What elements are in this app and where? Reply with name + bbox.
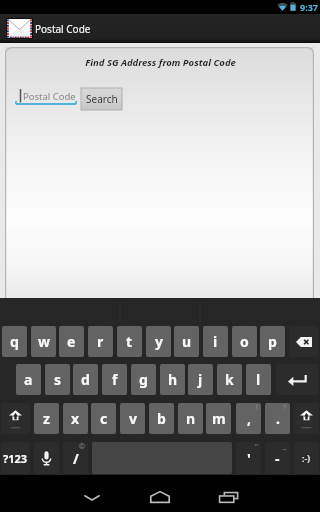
staticText: h	[168, 370, 178, 389]
button[interactable]: Home	[130, 475, 190, 512]
button[interactable]: o	[232, 326, 257, 357]
button[interactable]: Emoji	[294, 442, 319, 474]
staticText: u	[182, 332, 192, 351]
button[interactable]: r	[88, 326, 113, 357]
button[interactable]: -	[265, 442, 290, 474]
staticText: r	[97, 332, 104, 351]
staticText: t	[126, 332, 133, 351]
staticText: g	[139, 370, 148, 389]
staticText: .	[276, 409, 280, 428]
button[interactable]: Recent apps	[198, 475, 258, 512]
button[interactable]: j	[188, 364, 213, 395]
button[interactable]: b	[149, 403, 174, 434]
button[interactable]: ?123	[1, 442, 30, 474]
staticText: ©	[79, 442, 85, 452]
staticText: Postal Code	[23, 90, 76, 103]
button[interactable]: e	[59, 326, 84, 357]
button[interactable]: v	[120, 403, 145, 434]
staticText: j	[198, 370, 203, 389]
staticText: -	[275, 449, 280, 468]
button[interactable]: '	[236, 442, 261, 474]
button[interactable]: q	[2, 326, 27, 357]
staticText: d	[81, 370, 90, 389]
staticText: '	[247, 449, 251, 468]
staticText: ?123	[3, 451, 28, 466]
button[interactable]: z	[34, 403, 59, 434]
staticText: _	[283, 442, 287, 452]
button[interactable]: h	[160, 364, 185, 395]
button[interactable]: Backspace	[289, 326, 318, 357]
staticText: ,	[247, 409, 251, 428]
staticText: s	[54, 370, 62, 389]
staticText: x	[71, 409, 80, 428]
button[interactable]: Enter	[276, 364, 318, 395]
staticText: o	[240, 332, 249, 351]
staticText: z	[43, 409, 50, 428]
staticText: ?	[283, 403, 287, 413]
staticText: Postal Code	[35, 22, 91, 36]
staticText: q	[10, 332, 19, 351]
staticText: a	[24, 370, 33, 389]
staticText: v	[129, 409, 137, 428]
staticText: 9:37	[300, 1, 318, 13]
staticText: f	[112, 370, 118, 389]
staticText: w	[38, 332, 50, 351]
button[interactable]: ,	[236, 403, 261, 434]
button[interactable]: m	[206, 403, 231, 434]
button[interactable]: x	[63, 403, 88, 434]
button[interactable]: c	[91, 403, 116, 434]
button[interactable]: a	[16, 364, 41, 395]
button[interactable]: u	[174, 326, 199, 357]
staticText: p	[268, 332, 277, 351]
staticText: n	[186, 409, 196, 428]
staticText: l	[256, 370, 261, 389]
button[interactable]: w	[31, 326, 56, 357]
staticText: :-)	[302, 452, 311, 464]
staticText: b	[157, 409, 166, 428]
staticText: Search	[86, 92, 118, 106]
staticText: /	[73, 449, 79, 468]
staticText: Find SG Address from Postal Code	[85, 56, 236, 69]
button[interactable]: d	[73, 364, 98, 395]
button[interactable]: Back	[62, 475, 122, 512]
staticText: "	[255, 442, 258, 452]
button[interactable]: f	[102, 364, 127, 395]
button[interactable]: /	[63, 442, 88, 474]
button[interactable]: Search	[81, 88, 122, 110]
button[interactable]: y	[146, 326, 171, 357]
button[interactable]: p	[260, 326, 285, 357]
button[interactable]: Shift	[1, 403, 30, 434]
button[interactable]: k	[217, 364, 242, 395]
staticText: i	[213, 332, 218, 351]
button[interactable]: i	[203, 326, 228, 357]
staticText: k	[225, 370, 234, 389]
staticText: m	[212, 409, 226, 428]
button[interactable]: n	[178, 403, 203, 434]
button[interactable]: .	[265, 403, 290, 434]
button[interactable]: Voice input	[34, 442, 59, 474]
button[interactable]: t	[117, 326, 142, 357]
button[interactable]: s	[45, 364, 70, 395]
staticText: y	[155, 332, 163, 351]
staticText: !	[256, 403, 258, 413]
button[interactable]: g	[131, 364, 156, 395]
button[interactable]: Shift	[294, 403, 319, 434]
button[interactable]: l	[246, 364, 271, 395]
staticText: c	[100, 409, 108, 428]
staticText: e	[67, 332, 76, 351]
